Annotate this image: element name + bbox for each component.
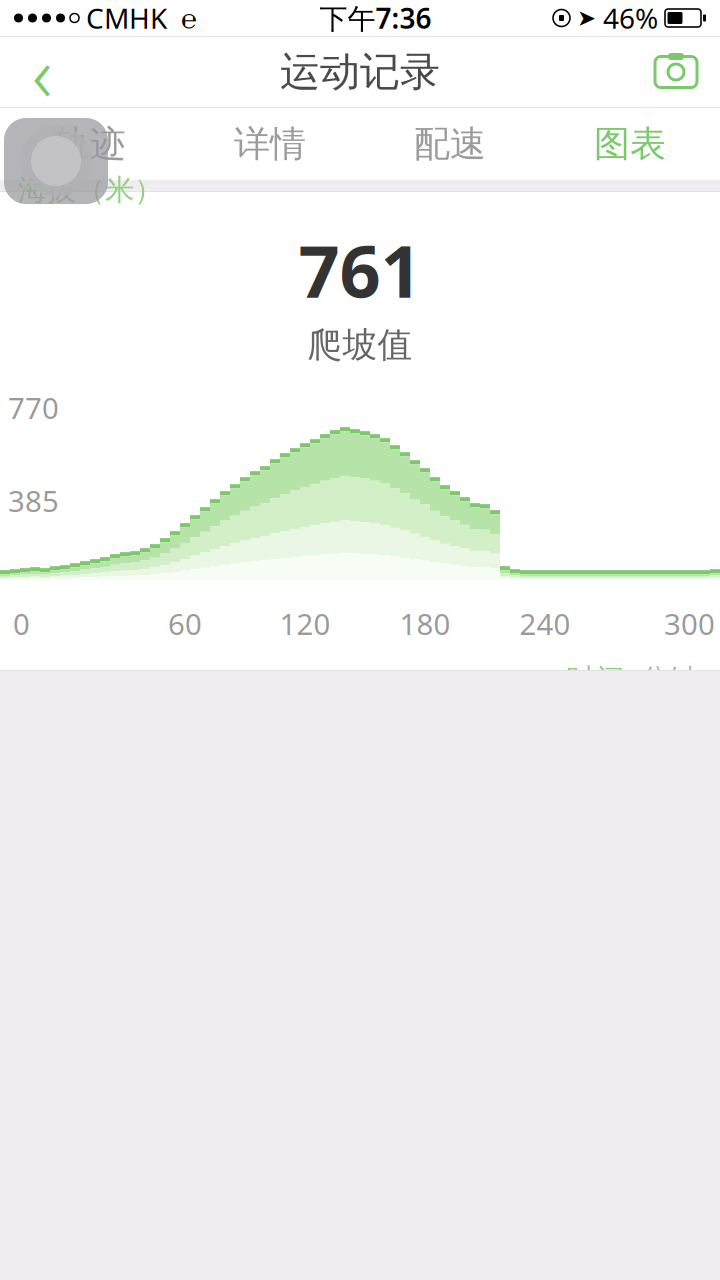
button[interactable]: 返回 bbox=[4, 37, 80, 107]
staticText: 运动记录 bbox=[280, 47, 440, 96]
staticText: ‹ bbox=[32, 21, 52, 123]
staticText: CMHK bbox=[79, 0, 167, 37]
staticText: 0 bbox=[13, 604, 30, 643]
staticText: 爬坡值 bbox=[307, 324, 412, 366]
staticText: 300 bbox=[664, 604, 715, 643]
staticText: 时间: 分钟 bbox=[566, 659, 698, 698]
staticText: 120 bbox=[279, 604, 330, 643]
staticText: 详情 bbox=[234, 122, 306, 166]
staticText: 180 bbox=[399, 604, 450, 643]
staticText: 轨迹 bbox=[54, 122, 126, 166]
button[interactable]: 详情 bbox=[180, 108, 360, 180]
button[interactable]: 配速 bbox=[360, 108, 540, 180]
staticText: 图表 bbox=[594, 122, 666, 166]
button[interactable]: 图表 bbox=[540, 108, 720, 180]
staticText: 配速 bbox=[414, 122, 486, 166]
staticText: 761 bbox=[298, 222, 421, 318]
staticText: 770 bbox=[8, 388, 59, 427]
button[interactable]: 辅助触控 bbox=[4, 118, 108, 204]
staticText: 46% bbox=[603, 0, 658, 37]
staticText: ℮ bbox=[167, 0, 198, 36]
staticText: 385 bbox=[8, 481, 59, 520]
staticText: 海拔（米） bbox=[18, 172, 163, 208]
button[interactable]: 拍照 bbox=[636, 37, 716, 107]
staticText: ➤ bbox=[577, 5, 596, 31]
staticText: 60 bbox=[168, 604, 202, 643]
staticText: 下午7:36 bbox=[319, 0, 431, 37]
button[interactable]: 轨迹 bbox=[0, 108, 180, 180]
staticText: 240 bbox=[519, 604, 570, 643]
